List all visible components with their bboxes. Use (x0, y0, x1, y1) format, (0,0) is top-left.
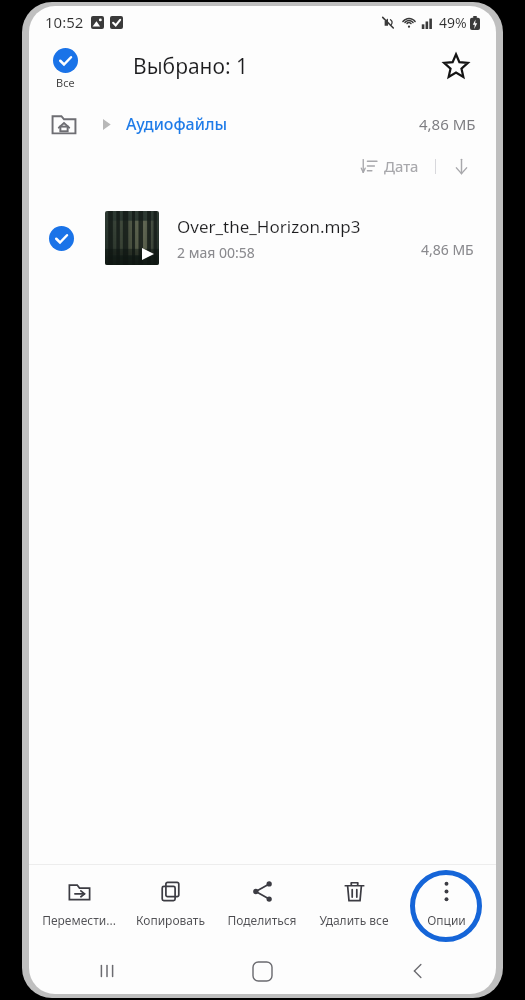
button[interactable]: Все (49, 46, 82, 92)
staticText: Выбрано: 1 (133, 52, 249, 81)
staticText: 10:52 (45, 12, 84, 32)
staticText: 2 мая 00:58 (177, 243, 255, 262)
button[interactable]: Копировать (124, 864, 216, 948)
button[interactable]: Recents (29, 948, 184, 994)
button[interactable]: Sort direction (448, 153, 474, 179)
staticText: 49% (439, 13, 467, 32)
button[interactable]: Удалить все (308, 864, 400, 948)
staticText: Удалить все (319, 912, 389, 928)
button[interactable]: Перемести... (33, 864, 124, 948)
button[interactable]: Дата (357, 154, 423, 178)
button[interactable]: Back (340, 948, 496, 994)
button[interactable]: Over_the_Horizon.mp3 (29, 202, 496, 274)
button[interactable]: Аудиофайлы (126, 113, 228, 135)
staticText: Все (56, 75, 75, 90)
staticText: Дата (384, 156, 419, 176)
button[interactable]: Home (184, 948, 340, 994)
staticText: Перемести... (42, 912, 116, 928)
staticText: Поделиться (227, 912, 297, 928)
button[interactable]: Favourite (434, 44, 478, 88)
staticText: Копировать (136, 912, 205, 928)
button[interactable]: Home folder (49, 109, 79, 139)
staticText: 4,86 МБ (419, 114, 476, 134)
staticText: Over_the_Horizon.mp3 (177, 215, 361, 238)
staticText: 4,86 МБ (421, 240, 474, 259)
staticText: Опции (427, 912, 466, 928)
button[interactable]: Опции (400, 864, 492, 948)
button[interactable]: Поделиться (216, 864, 308, 948)
